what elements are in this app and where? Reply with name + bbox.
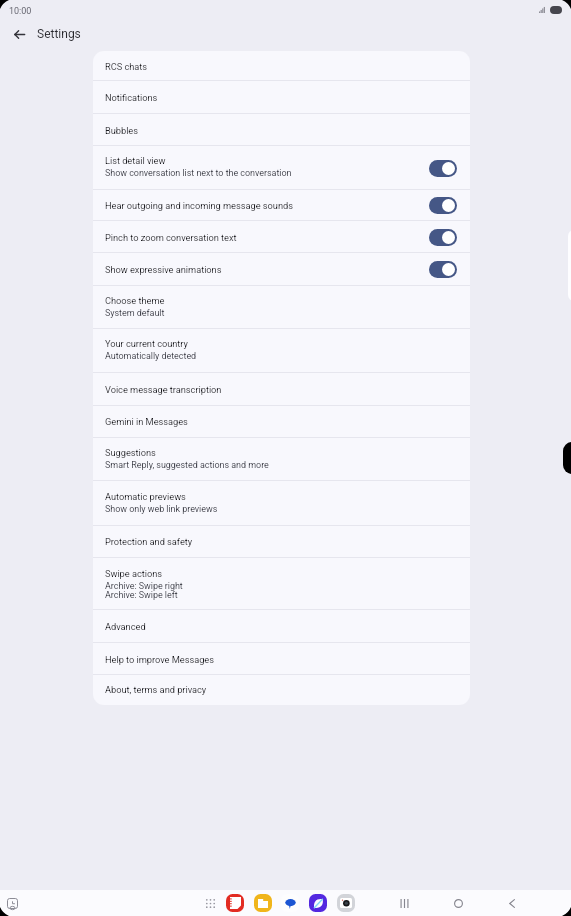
button[interactable]: Gemini in Messages [93,405,470,438]
staticText: Your current country [105,338,188,349]
staticText: RCS chats [105,61,148,72]
button[interactable]: Automatic previews [93,481,470,526]
button[interactable]: Keep [226,894,244,912]
button[interactable]: Bubbles [93,114,470,146]
button[interactable]: Help to improve Messages [93,643,470,675]
button[interactable]: About, terms and privacy [93,674,470,705]
button[interactable]: Swipe actions [93,558,470,610]
button[interactable]: Protection and safety [93,525,470,558]
staticText: Gemini in Messages [105,416,188,427]
staticText: Help to improve Messages [105,654,214,665]
staticText: Automatic previews [105,491,186,502]
staticText: Protection and safety [105,536,193,547]
button[interactable]: Pinch to zoom conversation text [93,221,470,253]
staticText: About, terms and privacy [105,684,207,695]
button[interactable]: Messages [281,894,299,912]
staticText: Archive: Swipe right Archive: Swipe left [105,581,183,600]
button[interactable]: All apps [202,895,218,911]
button[interactable]: Advanced [93,609,470,643]
button[interactable]: Notifications [93,81,470,114]
staticText: System default [105,308,165,319]
button[interactable]: Toggle Pinch to zoom conversation text [429,229,457,246]
button[interactable]: List detail view [93,146,470,190]
staticText: Hear outgoing and incoming message sound… [105,200,293,211]
button[interactable]: Camera [337,894,355,912]
staticText: Automatically detected [105,351,197,362]
staticText: List detail view [105,155,166,166]
button[interactable]: Show expressive animations [93,253,470,286]
staticText: Smart Reply, suggested actions and more [105,460,269,471]
button[interactable]: Files [254,894,272,912]
button[interactable]: Choose theme [93,286,470,329]
button[interactable]: Your current country [93,329,470,373]
staticText: Show only web link previews [105,504,218,515]
staticText: Pinch to zoom conversation text [105,232,237,243]
staticText: Choose theme [105,295,165,306]
staticText: Advanced [105,621,146,632]
button[interactable]: Suggestions [93,438,470,481]
staticText: Settings [37,27,81,41]
button[interactable]: RCS chats [93,51,470,81]
button[interactable]: Hear outgoing and incoming message sound… [93,190,470,221]
staticText: Bubbles [105,125,138,136]
button[interactable]: Voice message transcription [93,373,470,406]
button[interactable]: Browser [309,894,327,912]
staticText: Notifications [105,92,158,103]
staticText: Show conversation list next to the conve… [105,168,292,179]
staticText: Suggestions [105,447,156,458]
button[interactable]: Recents [395,894,413,912]
button[interactable]: Screen time [4,895,21,912]
button[interactable]: Home [449,894,467,912]
staticText: 10:00 [9,6,32,17]
staticText: Show expressive animations [105,264,222,275]
button[interactable]: Toggle Hear outgoing and incoming messag… [429,197,457,214]
staticText: Voice message transcription [105,384,222,395]
button[interactable]: Back [503,894,521,912]
button[interactable]: Back [7,23,31,45]
staticText: Swipe actions [105,568,163,579]
button[interactable]: Toggle List detail view [429,160,457,177]
button[interactable]: Toggle Show expressive animations [429,261,457,278]
